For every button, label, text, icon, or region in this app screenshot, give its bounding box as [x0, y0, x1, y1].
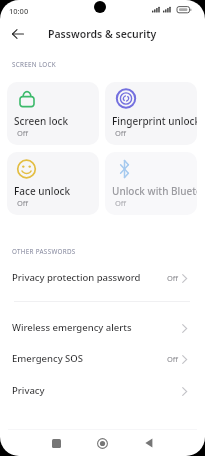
staticText: Off: [115, 198, 127, 208]
staticText: Off: [115, 128, 127, 138]
staticText: SCREEN LOCK: [12, 60, 57, 69]
button[interactable]: Fingerprint unlock: [105, 82, 197, 145]
button[interactable]: Wireless emergency alerts: [0, 312, 205, 343]
staticText: Privacy: [12, 384, 45, 397]
button[interactable]: Emergency SOS: [0, 343, 205, 374]
staticText: Off: [17, 128, 29, 138]
button[interactable]: [88, 431, 116, 455]
staticText: Unlock with Bluetooth: [112, 184, 197, 198]
button[interactable]: [42, 431, 71, 455]
button[interactable]: Privacy protection password: [0, 262, 205, 293]
staticText: Fingerprint unlock: [112, 114, 197, 128]
button[interactable]: [134, 431, 163, 455]
staticText: OTHER PASSWORDS: [12, 247, 76, 256]
button[interactable]: Privacy: [0, 375, 205, 406]
staticText: Wireless emergency alerts: [12, 321, 132, 334]
button[interactable]: [8, 24, 28, 44]
staticText: Passwords & security: [48, 27, 157, 41]
staticText: Off: [17, 198, 29, 208]
staticText: Off: [167, 354, 179, 364]
staticText: 10:00: [9, 6, 29, 16]
staticText: Off: [167, 273, 179, 283]
staticText: Privacy protection password: [12, 271, 141, 284]
staticText: Face unlock: [14, 184, 99, 198]
staticText: Screen lock: [14, 114, 99, 128]
button[interactable]: Screen lock: [7, 82, 99, 145]
staticText: Emergency SOS: [12, 352, 84, 365]
button[interactable]: Unlock with Bluetooth: [105, 152, 197, 215]
button[interactable]: Face unlock: [7, 152, 99, 215]
